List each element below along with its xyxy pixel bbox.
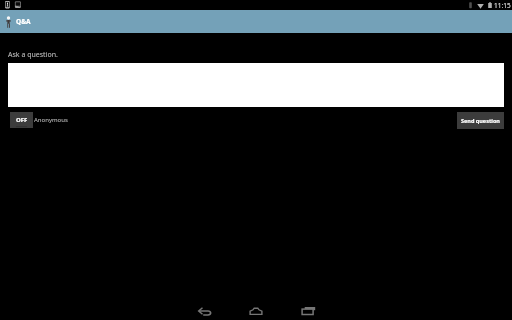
staticText: Q&A [16, 17, 31, 26]
button[interactable]: Back [197, 300, 215, 320]
staticText: Send question [461, 117, 500, 124]
staticText: OFF [16, 116, 28, 124]
button[interactable]: Q&A, app bar [0, 10, 512, 33]
button[interactable]: Recent apps [300, 300, 318, 320]
button[interactable]: Send question [457, 112, 504, 129]
staticText: Anonymous [34, 116, 68, 124]
staticText: Ask a question. [8, 50, 58, 60]
staticText: 11:15 [494, 1, 511, 10]
button[interactable]: OFF [10, 112, 33, 128]
button[interactable]: Home [248, 300, 266, 320]
